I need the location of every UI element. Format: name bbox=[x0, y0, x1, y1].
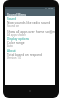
button[interactable]: Sound bbox=[7, 17, 17, 21]
staticText: Total based on respond bbox=[7, 53, 43, 57]
staticText: About bbox=[7, 49, 16, 53]
button[interactable]: Auto bbox=[7, 44, 13, 48]
button[interactable]: All apps shown bbox=[7, 33, 26, 37]
button[interactable]: Display options bbox=[7, 37, 30, 41]
staticText: •• 12:00 bbox=[45, 7, 54, 9]
button[interactable]: Help bbox=[49, 30, 53, 34]
button[interactable]: Sound on bbox=[7, 24, 20, 28]
button[interactable]: About bbox=[7, 49, 16, 53]
button[interactable]: Total based on respond bbox=[7, 53, 43, 57]
staticText: Now sounds like radio sound bbox=[7, 21, 51, 25]
staticText: Version 1.0 bbox=[7, 56, 21, 60]
staticText: Auto bbox=[7, 44, 13, 48]
button[interactable]: Show all apps over home screen bbox=[7, 30, 56, 34]
button[interactable]: Sound Menu bbox=[5, 9, 55, 16]
button[interactable]: Now sounds like radio sound bbox=[7, 21, 51, 25]
staticText: Sound Menu bbox=[7, 13, 27, 17]
staticText: Sound on bbox=[7, 24, 20, 28]
staticText: All apps shown bbox=[7, 33, 26, 37]
staticText: Sound bbox=[7, 17, 17, 21]
staticText: Show all apps over home screen bbox=[7, 30, 56, 34]
staticText: Display options bbox=[7, 37, 30, 41]
button[interactable]: Version 1.0 bbox=[7, 56, 21, 60]
staticText: Color range bbox=[7, 41, 25, 45]
button[interactable]: Color range bbox=[7, 41, 25, 45]
